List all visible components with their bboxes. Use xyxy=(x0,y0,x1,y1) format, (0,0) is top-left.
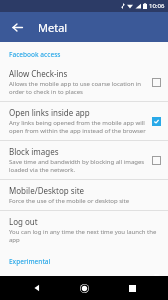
staticText: You can log in any time the next time yo… xyxy=(9,228,161,244)
staticText: Block images xyxy=(9,146,59,157)
staticText: Log out xyxy=(9,216,38,227)
button[interactable]: Recent apps xyxy=(121,277,143,299)
button[interactable]: Block images xyxy=(0,141,168,179)
staticText: Allow Check-ins xyxy=(9,68,68,79)
staticText: Force the use of the mobile or desktop s… xyxy=(9,197,130,205)
staticText: Open links inside app xyxy=(9,107,90,118)
button[interactable]: Open links inside app xyxy=(0,102,168,140)
button[interactable]: Navigate up xyxy=(7,17,27,37)
staticText: Mobile/Desktop site xyxy=(9,185,85,196)
button[interactable]: Log out xyxy=(0,211,168,249)
staticText: Allows the mobile app to use coarse loca… xyxy=(9,80,146,96)
button[interactable]: Mobile/Desktop site xyxy=(0,180,168,210)
button[interactable]: Home xyxy=(73,277,95,299)
button[interactable]: Back xyxy=(26,277,48,299)
staticText: Metal xyxy=(38,20,68,35)
staticText: Experimental xyxy=(9,257,51,266)
button[interactable]: Allow Check-ins xyxy=(0,63,168,101)
staticText: Any links being opened from the mobile a… xyxy=(9,119,146,135)
staticText: Save time and bandwidth by blocking all … xyxy=(9,158,146,174)
staticText: 10:06 xyxy=(149,2,165,10)
staticText: Facebook access xyxy=(9,50,61,59)
